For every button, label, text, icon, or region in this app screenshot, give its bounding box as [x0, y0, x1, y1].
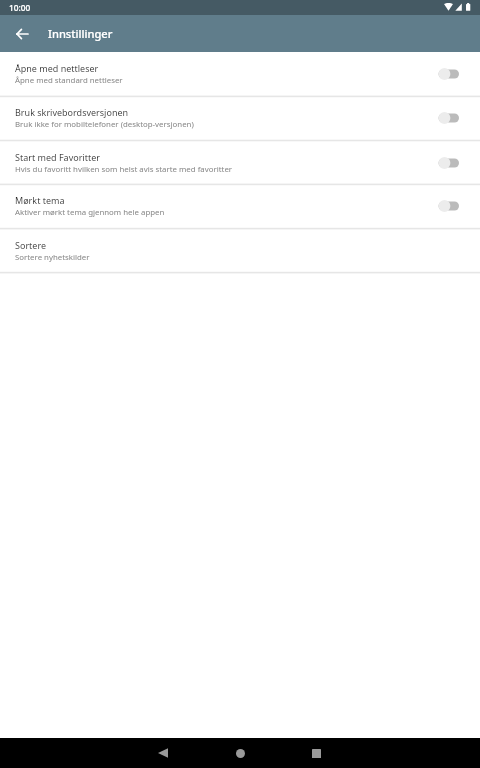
staticText: Start med Favoritter [15, 151, 100, 163]
button[interactable]: Sortere [0, 229, 480, 273]
button[interactable]: Back [0, 15, 44, 52]
staticText: Sortere [15, 239, 47, 251]
staticText: Innstillinger [48, 26, 113, 41]
button[interactable]: Recent apps [292, 738, 341, 768]
staticText: Sortere nyhetskilder [15, 252, 90, 263]
button[interactable]: Bruk skrivebordsversjonen [0, 96, 480, 140]
button[interactable]: Start med Favoritter [425, 149, 459, 177]
staticText: Bruk ikke for mobiltelefoner (desktop-ve… [15, 119, 194, 130]
button[interactable]: Åpne med nettleser [425, 60, 459, 88]
staticText: 10:00 [9, 2, 31, 13]
staticText: Åpne med standard nettleser [15, 75, 123, 86]
staticText: Åpne med nettleser [15, 62, 99, 74]
button[interactable]: Mørkt tema [0, 184, 480, 228]
button[interactable]: Åpne med nettleser [0, 52, 480, 96]
button[interactable]: Home [216, 738, 265, 768]
staticText: Aktiver mørkt tema gjennom hele appen [15, 207, 165, 218]
staticText: Mørkt tema [15, 194, 65, 206]
button[interactable]: Back [138, 738, 187, 768]
button[interactable]: Start med Favoritter [0, 141, 480, 185]
button[interactable]: Bruk skrivebordsversjonen [425, 104, 459, 132]
staticText: Bruk skrivebordsversjonen [15, 106, 129, 118]
staticText: Hvis du favoritt hvilken som helst avis … [15, 164, 233, 175]
button[interactable]: Mørkt tema [425, 192, 459, 220]
